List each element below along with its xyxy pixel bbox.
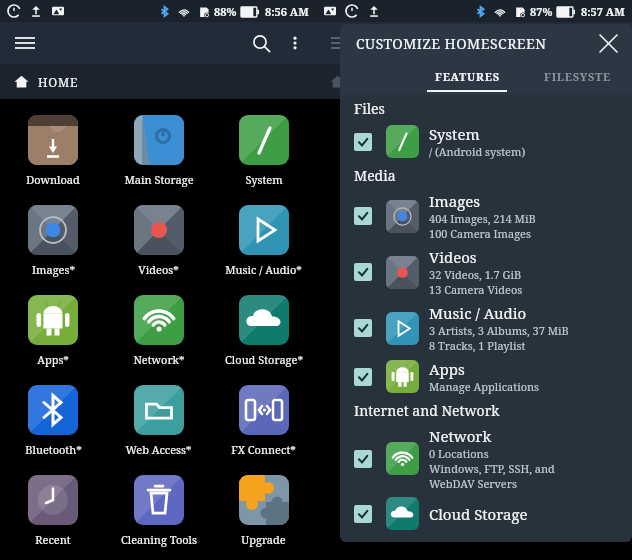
staticText: HOME [38,74,79,90]
staticText: FILESYSTE [544,69,611,84]
staticText: Images [429,191,480,211]
staticText: Windows, FTP, SSH, and [429,461,555,476]
staticText: Files [354,99,385,118]
staticText: 0 Locations [429,446,489,461]
button[interactable]: System [211,111,316,201]
staticText: 404 Images, 214 MiB [429,211,536,226]
staticText: 87% [530,4,553,19]
button[interactable]: Bluetooth* [0,381,106,471]
button[interactable]: Apps* [0,291,106,381]
staticText: Network* [133,352,185,367]
staticText: Upgrade [241,532,286,547]
button[interactable]: Cloud Storage [340,494,632,533]
button[interactable]: More options [280,28,310,58]
staticText: Media [354,166,396,185]
staticText: Download [26,172,80,187]
button[interactable]: Recent [0,471,106,560]
button[interactable]: System [340,121,632,162]
staticText: / (Android system) [429,144,526,159]
button[interactable]: Menu [8,26,42,60]
button[interactable]: FILESYSTE [522,62,632,95]
staticText: 8 Tracks, 1 Playlist [429,338,526,353]
staticText: CUSTOMIZE HOMESCREEN [356,34,547,53]
staticText: Music / Audio* [225,262,302,277]
staticText: 32 Videos, 1.7 GiB [429,267,522,282]
staticText: Cloud Storage [429,504,528,524]
staticText: Manage Applications [429,379,540,394]
button[interactable]: Images [340,188,632,244]
staticText: FEATURES [435,69,500,84]
button[interactable]: Videos* [106,201,211,291]
staticText: Apps* [37,352,69,367]
button[interactable]: Music / Audio [340,300,632,356]
staticText: Bluetooth* [25,442,82,457]
staticText: 13 Camera Videos [429,282,523,297]
button[interactable]: Cleaning Tools [106,471,211,560]
button[interactable]: Main Storage [106,111,211,201]
button[interactable]: Network [340,423,632,494]
staticText: Cloud Storage* [225,352,303,367]
button[interactable]: Images* [0,201,106,291]
staticText: 8:56 AM [265,4,309,19]
button[interactable]: Videos [340,244,632,300]
button[interactable]: Network* [106,291,211,381]
staticText: Apps [429,359,465,379]
button[interactable]: Upgrade [211,471,316,560]
staticText: Music / Audio [429,303,527,323]
staticText: Cleaning Tools [121,532,197,547]
button[interactable]: Download [0,111,106,201]
staticText: 100 Camera Images [429,226,531,241]
staticText: Network [429,426,492,446]
staticText: Main Storage [124,172,194,187]
button[interactable]: HOME [0,64,316,99]
button[interactable]: Web Access* [106,381,211,471]
button[interactable]: Search [244,26,278,60]
staticText: Videos [429,247,477,267]
staticText: Internet and Network [354,401,500,420]
staticText: Recent [35,532,71,547]
staticText: 8:57 AM [581,4,625,19]
button[interactable]: Cloud Storage* [211,291,316,381]
staticText: Images* [32,262,75,277]
button[interactable]: Close [592,27,624,59]
button[interactable]: FEATURES [412,62,522,95]
staticText: System [245,172,283,187]
staticText: 3 Artists, 3 Albums, 37 MiB [429,323,569,338]
staticText: System [429,124,480,144]
button[interactable]: Apps [340,356,632,397]
staticText: Web Access* [125,442,192,457]
staticText: FX Connect* [231,442,296,457]
staticText: WebDAV Servers [429,476,517,491]
staticText: 88% [214,4,237,19]
button[interactable]: Music / Audio* [211,201,316,291]
button[interactable]: FX Connect* [211,381,316,471]
staticText: Videos* [138,262,179,277]
